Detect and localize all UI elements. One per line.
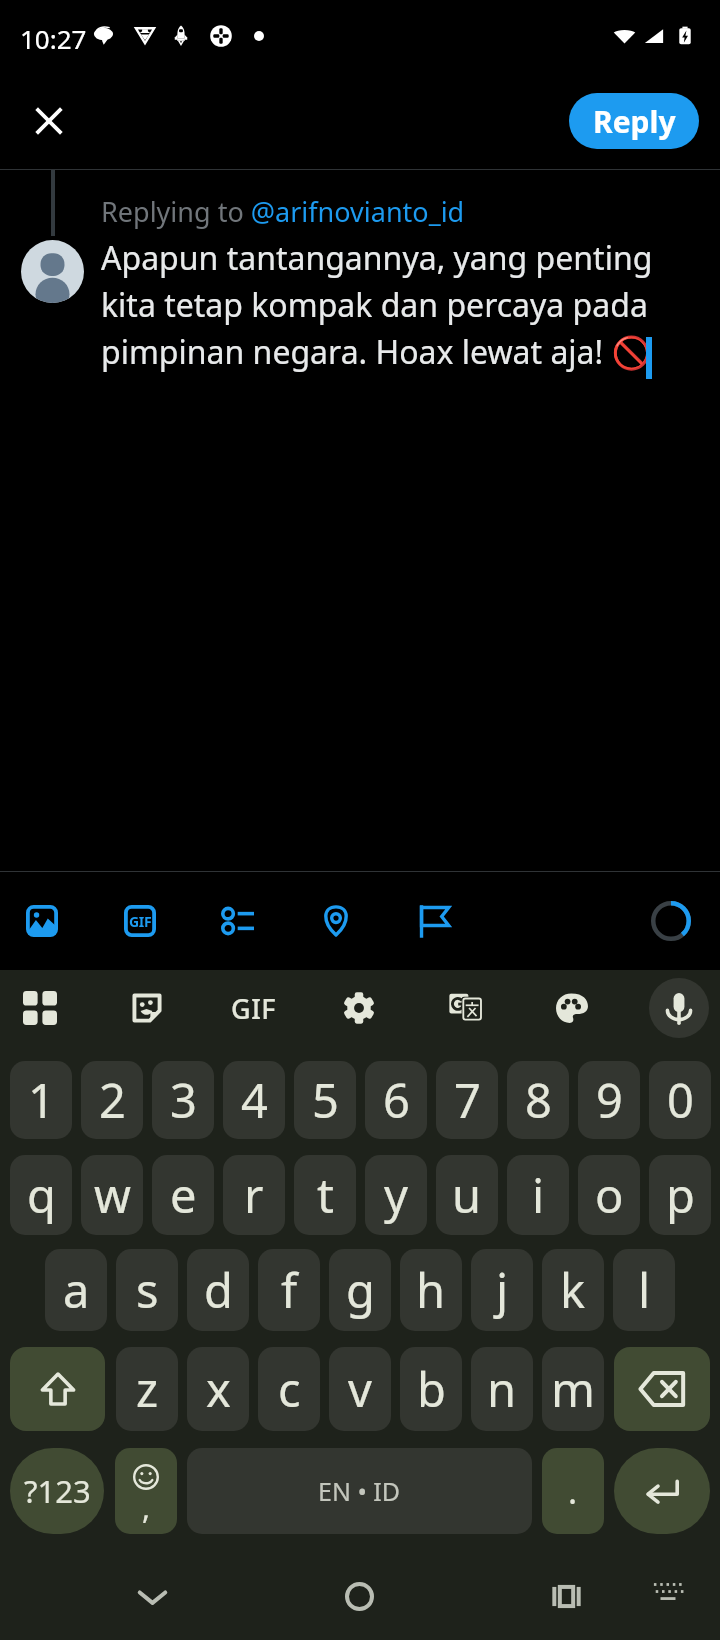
staticText: c <box>278 1357 301 1421</box>
staticText: i <box>532 1163 545 1227</box>
staticText: w <box>94 1163 131 1227</box>
button[interactable]: l <box>613 1249 675 1331</box>
button[interactable]: EN • ID <box>187 1448 532 1534</box>
button[interactable]: Hide keyboard <box>123 1567 181 1625</box>
staticText: z <box>136 1357 159 1421</box>
staticText: 0 <box>667 1068 694 1132</box>
button[interactable]: Shift <box>10 1347 105 1431</box>
button[interactable]: Switch keyboard <box>644 1567 692 1615</box>
staticText: . <box>568 1468 578 1514</box>
staticText: GIF <box>129 912 152 931</box>
button[interactable]: c <box>258 1347 320 1431</box>
staticText: 1 <box>28 1068 55 1132</box>
staticText: ?123 <box>24 1470 91 1512</box>
button[interactable]: 2 <box>81 1061 143 1139</box>
staticText: b <box>417 1357 446 1421</box>
button[interactable]: GIF <box>225 980 281 1036</box>
button[interactable]: 5 <box>294 1061 356 1139</box>
button[interactable]: 1 <box>10 1061 72 1139</box>
button[interactable]: y <box>365 1155 427 1235</box>
button[interactable]: a <box>45 1249 107 1331</box>
button[interactable]: j <box>471 1249 533 1331</box>
button[interactable]: k <box>542 1249 604 1331</box>
button[interactable]: Voice input <box>649 978 709 1038</box>
button[interactable]: Backspace <box>614 1347 710 1431</box>
button[interactable]: 3 <box>152 1061 214 1139</box>
staticText: j <box>496 1258 509 1322</box>
staticText: g <box>346 1258 375 1322</box>
button[interactable]: 0 <box>649 1061 711 1139</box>
button[interactable]: . <box>542 1448 604 1534</box>
button[interactable]: Apps <box>12 980 68 1036</box>
staticText: Replying to @arifnovianto_id <box>101 193 465 230</box>
staticText: EN • ID <box>318 1474 401 1508</box>
button[interactable]: v <box>329 1347 391 1431</box>
button[interactable]: r <box>223 1155 285 1235</box>
staticText: p <box>666 1163 695 1227</box>
staticText: 6 <box>383 1068 410 1132</box>
button[interactable]: x <box>187 1347 249 1431</box>
button[interactable]: Enter <box>614 1448 710 1534</box>
button[interactable]: w <box>81 1155 143 1235</box>
button[interactable]: s <box>116 1249 178 1331</box>
staticText: m <box>551 1357 595 1421</box>
button[interactable]: m <box>542 1347 604 1431</box>
staticText: 9 <box>596 1068 623 1132</box>
button[interactable]: f <box>258 1249 320 1331</box>
button[interactable]: u <box>436 1155 498 1235</box>
button[interactable]: Community note <box>402 889 466 953</box>
button[interactable]: 6 <box>365 1061 427 1139</box>
staticText: q <box>27 1163 56 1227</box>
button[interactable]: q <box>10 1155 72 1235</box>
button[interactable]: z <box>116 1347 178 1431</box>
button[interactable]: Add poll <box>206 889 270 953</box>
staticText: 10:27 <box>20 21 87 56</box>
staticText: f <box>281 1258 298 1322</box>
button[interactable]: Stickers <box>119 980 175 1036</box>
button[interactable]: n <box>471 1347 533 1431</box>
staticText: 4 <box>241 1068 268 1132</box>
staticText: n <box>487 1357 517 1421</box>
staticText: r <box>244 1163 264 1227</box>
button[interactable]: b <box>400 1347 462 1431</box>
button[interactable]: Character count <box>639 889 703 953</box>
button[interactable]: 4 <box>223 1061 285 1139</box>
button[interactable]: Tag location <box>304 889 368 953</box>
button[interactable]: Settings <box>331 980 387 1036</box>
staticText: , <box>142 1487 151 1528</box>
staticText: t <box>317 1163 334 1227</box>
button[interactable]: o <box>578 1155 640 1235</box>
staticText: Apapun tantangannya, yang penting kita t… <box>101 236 701 374</box>
button[interactable]: Translate <box>437 980 493 1036</box>
staticText: GIF <box>231 990 276 1027</box>
button[interactable]: 9 <box>578 1061 640 1139</box>
button[interactable]: 7 <box>436 1061 498 1139</box>
button[interactable]: ?123 <box>10 1448 104 1534</box>
staticText: 8 <box>525 1068 552 1132</box>
staticText: x <box>206 1357 231 1421</box>
staticText: o <box>595 1163 624 1227</box>
staticText: 3 <box>170 1068 197 1132</box>
button[interactable]: e <box>152 1155 214 1235</box>
staticText: h <box>416 1258 446 1322</box>
button[interactable]: t <box>294 1155 356 1235</box>
staticText: 5 <box>312 1068 339 1132</box>
button[interactable]: Add photos or video <box>10 889 74 953</box>
button[interactable]: Emoji <box>115 1448 177 1534</box>
button[interactable]: h <box>400 1249 462 1331</box>
staticText: 2 <box>99 1068 126 1132</box>
button[interactable]: g <box>329 1249 391 1331</box>
button[interactable]: Recent apps <box>537 1567 595 1625</box>
button[interactable]: Themes <box>544 980 600 1036</box>
button[interactable]: Close <box>21 93 77 149</box>
button[interactable]: Add a GIF <box>108 889 172 953</box>
button[interactable]: 8 <box>507 1061 569 1139</box>
staticText: u <box>452 1163 482 1227</box>
button[interactable]: p <box>649 1155 711 1235</box>
button[interactable]: d <box>187 1249 249 1331</box>
button[interactable]: i <box>507 1155 569 1235</box>
staticText: l <box>638 1258 651 1322</box>
button[interactable]: Home <box>330 1567 388 1625</box>
staticText: d <box>204 1258 233 1322</box>
button[interactable]: Reply <box>569 93 699 149</box>
